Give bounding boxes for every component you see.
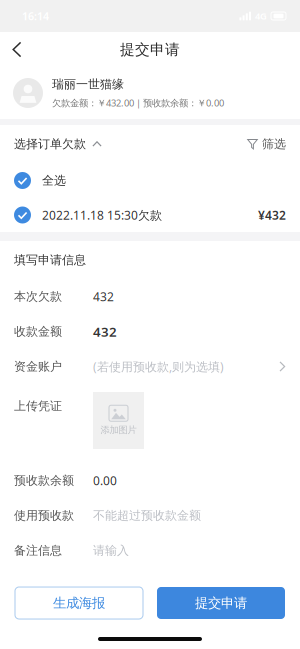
button[interactable]: 筛选 <box>247 125 286 163</box>
staticText: 请输入 <box>93 543 129 558</box>
staticText: 收款金额 <box>14 324 62 339</box>
staticText: 全选 <box>42 173 66 188</box>
staticText: 使用预收款 <box>14 508 74 523</box>
staticText: 432 <box>93 323 117 340</box>
staticText: 不能超过预收款金额 <box>93 508 201 523</box>
button[interactable]: 提交申请 <box>157 587 285 619</box>
button[interactable]: 生成海报 <box>15 587 143 619</box>
staticText: 上传凭证 <box>14 399 62 413</box>
staticText: 4G <box>255 10 267 22</box>
staticText: 2022.11.18 15:30欠款 <box>42 207 162 223</box>
staticText: 提交申请 <box>120 40 180 58</box>
staticText: 16:14 <box>22 9 49 23</box>
staticText: 瑞丽一世猫缘 <box>52 77 124 92</box>
staticText: ¥432 <box>258 207 286 223</box>
button[interactable]: Back <box>0 32 34 67</box>
staticText: 0.00 <box>93 472 117 488</box>
staticText: 选择订单欠款 <box>14 137 86 151</box>
staticText: 添加图片 <box>100 424 136 436</box>
staticText: 填写申请信息 <box>14 253 86 267</box>
staticText: 本次欠款 <box>14 289 62 304</box>
staticText: 资金账户 <box>14 359 62 374</box>
button[interactable]: 资金账户 <box>0 349 300 384</box>
staticText: 生成海报 <box>53 595 105 611</box>
button[interactable]: 全选 <box>0 163 300 198</box>
staticText: 提交申请 <box>195 595 247 611</box>
staticText: 备注信息 <box>14 543 62 558</box>
staticText: 欠款金额：￥432.00 | 预收款余额：￥0.00 <box>52 97 224 109</box>
staticText: 筛选 <box>262 137 286 151</box>
staticText: 432 <box>93 288 114 304</box>
staticText: (若使用预收款,则为选填) <box>93 358 224 374</box>
staticText: 预收款余额 <box>14 473 74 488</box>
button[interactable]: 2022.11.18 15:30欠款 <box>0 198 300 232</box>
button[interactable]: 选择订单欠款 <box>14 125 102 163</box>
button[interactable]: Add photo <box>93 392 144 449</box>
